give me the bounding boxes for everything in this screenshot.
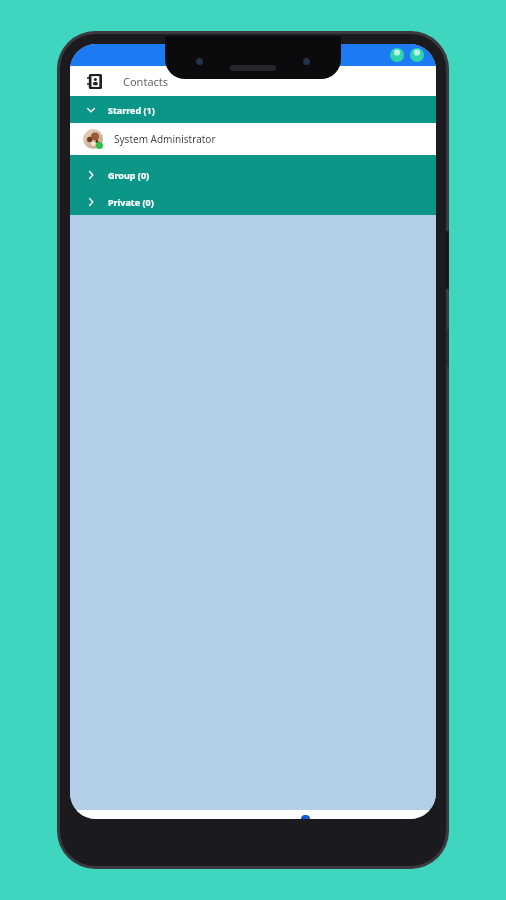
button[interactable]: Contacts	[81, 68, 107, 94]
staticText: Starred (1)	[108, 104, 155, 116]
staticText: Contacts	[123, 74, 169, 89]
button[interactable]: Group (0)	[70, 161, 436, 188]
button[interactable]: Starred (1)	[70, 96, 436, 123]
staticText: System Administrator	[114, 132, 216, 146]
button[interactable]: System Administrator	[70, 123, 436, 155]
button[interactable]: Private (0)	[70, 188, 436, 215]
staticText: Private (0)	[108, 196, 154, 208]
staticText: Group (0)	[108, 169, 150, 181]
